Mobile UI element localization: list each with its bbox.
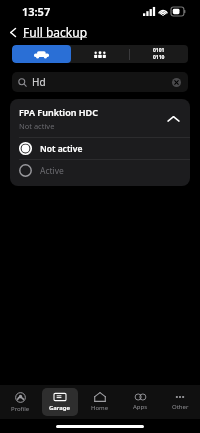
staticText: FPA Funktion HDC <box>19 106 98 118</box>
staticText: Home <box>91 404 109 412</box>
button[interactable]: Back <box>5 22 200 41</box>
button[interactable]: Apps <box>122 388 158 416</box>
staticText: Active <box>40 165 64 177</box>
button[interactable]: Profile <box>2 388 38 416</box>
staticText: Other <box>172 403 189 411</box>
staticText: 13:57 <box>22 4 51 19</box>
button[interactable]: Other <box>162 388 198 416</box>
button[interactable]: People <box>71 45 129 63</box>
button[interactable]: Vehicles <box>12 45 71 63</box>
other: Back <box>5 24 21 40</box>
other: Collapse <box>165 111 181 127</box>
staticText: Not active <box>40 143 83 155</box>
staticText: 0110 <box>153 54 165 61</box>
button[interactable]: Active <box>10 160 190 181</box>
button[interactable]: FPA Funktion HDC <box>10 99 190 137</box>
button[interactable]: Home <box>82 388 118 416</box>
staticText: Profile <box>11 405 30 413</box>
button[interactable]: Hd <box>12 72 188 92</box>
button[interactable]: Data <box>130 45 188 63</box>
staticText: Not active <box>19 121 55 131</box>
staticText: 0101 <box>153 47 165 54</box>
button[interactable]: Garage <box>42 388 78 416</box>
staticText: Full backup <box>23 24 88 40</box>
button[interactable]: Not active <box>10 138 190 159</box>
staticText: Hd <box>32 75 46 89</box>
button[interactable]: Clear search <box>171 77 182 88</box>
staticText: Apps <box>133 403 148 411</box>
staticText: Garage <box>49 404 71 412</box>
